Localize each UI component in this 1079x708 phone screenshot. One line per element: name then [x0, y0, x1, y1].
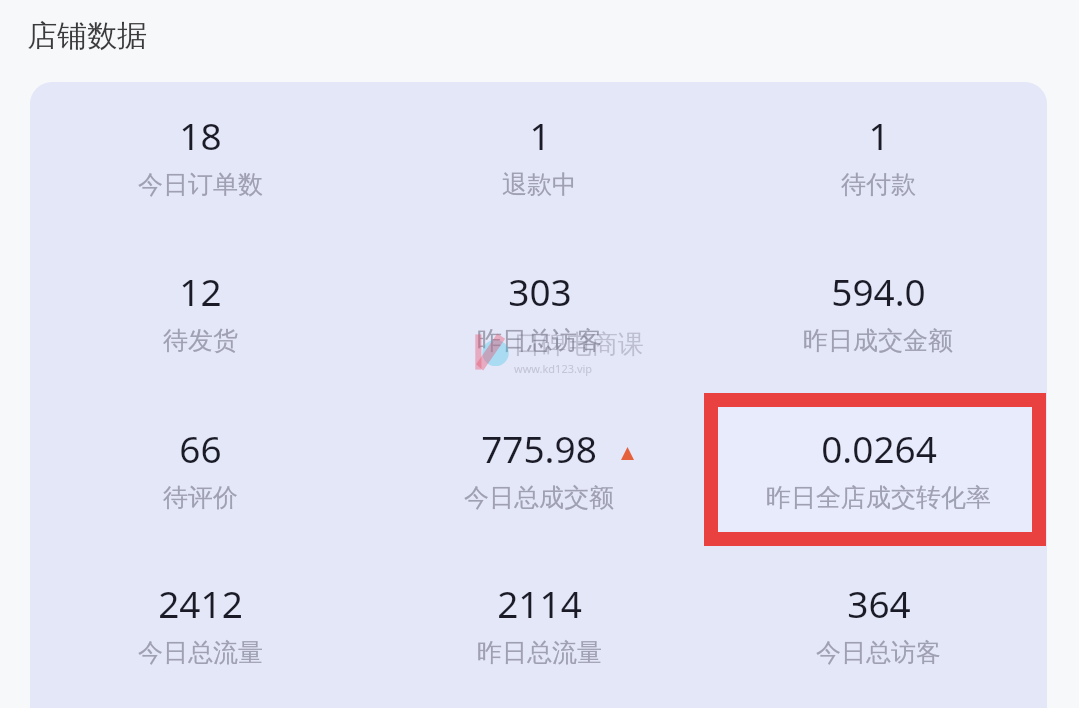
staticText: 昨日总流量 — [477, 637, 602, 668]
staticText: 18 — [179, 110, 222, 160]
staticText: www.kd123.vip — [514, 361, 593, 376]
staticText: 昨日全店成交转化率 — [766, 482, 991, 513]
button[interactable]: 18 — [138, 110, 263, 200]
staticText: 店铺数据 — [27, 17, 147, 55]
staticText: 口碑电商课 — [514, 328, 644, 361]
staticText: 待发货 — [163, 325, 238, 356]
button[interactable]: 66 — [163, 423, 238, 513]
button[interactable]: 364 — [816, 578, 941, 668]
staticText: 1 — [529, 110, 551, 160]
staticText: 昨日总访客 — [477, 325, 602, 356]
staticText: 2114 — [497, 578, 582, 628]
staticText: 今日总流量 — [138, 637, 263, 668]
button[interactable]: 2412 — [138, 578, 263, 668]
staticText: 待付款 — [841, 169, 916, 200]
button[interactable]: Highlighted metric — [704, 393, 1046, 546]
staticText: 今日总成交额 — [464, 482, 614, 513]
staticText: 昨日成交金额 — [803, 325, 953, 356]
staticText: 66 — [179, 423, 222, 473]
staticText: 0.0264 — [821, 423, 937, 473]
staticText: 今日订单数 — [138, 169, 263, 200]
staticText: 2412 — [158, 578, 243, 628]
button[interactable]: 1 — [841, 110, 916, 200]
button[interactable]: 1 — [502, 110, 577, 200]
staticText: 待评价 — [163, 482, 238, 513]
staticText: 1 — [868, 110, 890, 160]
staticText: 775.98 — [481, 423, 597, 473]
staticText: 退款中 — [502, 169, 577, 200]
button[interactable]: 0.0264 — [766, 423, 991, 513]
button[interactable]: 12 — [163, 266, 238, 356]
button[interactable]: 594.0 — [803, 266, 953, 356]
button[interactable]: 2114 — [477, 578, 602, 668]
staticText: 364 — [847, 578, 911, 628]
staticText: 303 — [508, 266, 572, 316]
staticText: 594.0 — [831, 266, 926, 316]
staticText: 12 — [179, 266, 222, 316]
button[interactable]: 303 — [477, 266, 602, 356]
staticText: 今日总访客 — [816, 637, 941, 668]
button[interactable]: 775.98 — [464, 423, 614, 513]
